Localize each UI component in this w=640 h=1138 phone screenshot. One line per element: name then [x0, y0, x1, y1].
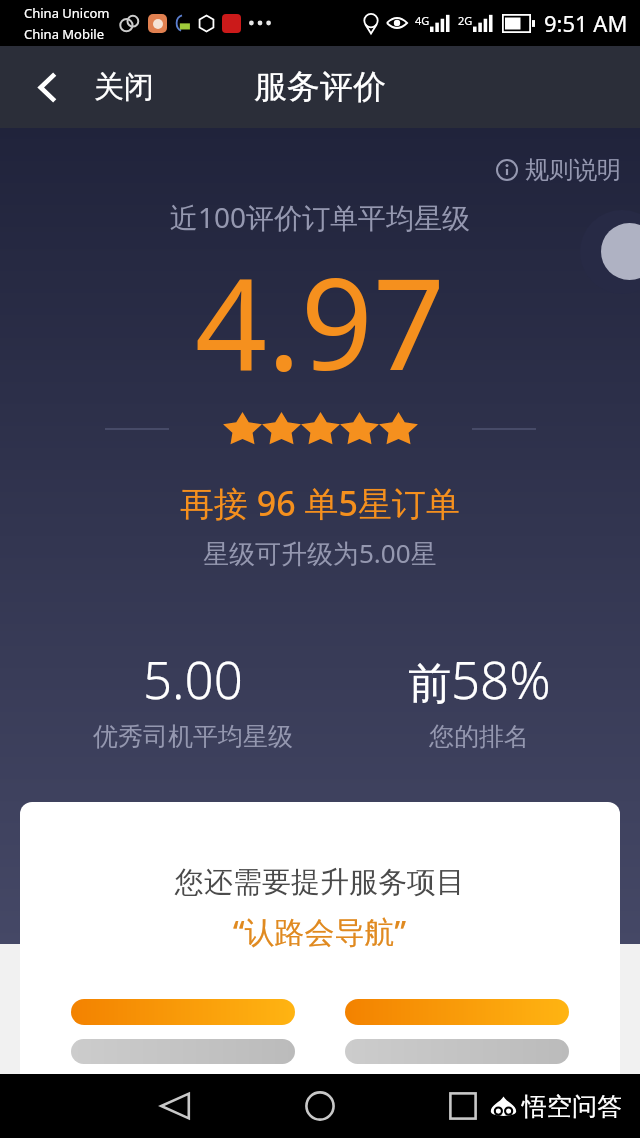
button[interactable]: Back — [145, 1076, 205, 1136]
staticText: 9:51 AM — [544, 8, 628, 38]
staticText: 星级可升级为5.00星 — [203, 535, 437, 571]
staticText: 关闭 — [94, 68, 154, 106]
staticText: 再接 96 单5星订单 — [180, 480, 461, 526]
staticText: 悟空问答 — [522, 1091, 622, 1122]
staticText: 近100评价订单平均星级 — [170, 198, 471, 236]
staticText: 4.97 — [195, 235, 445, 407]
staticText: 4G — [415, 13, 430, 28]
button[interactable]: 规则说明 — [482, 149, 640, 191]
staticText: 5.00 — [143, 644, 243, 713]
staticText: 服务评价 — [254, 66, 386, 108]
staticText: 2G — [458, 13, 473, 28]
staticText: 您的排名 — [429, 721, 529, 752]
button[interactable]: Recents — [433, 1076, 493, 1136]
button[interactable]: Avatar — [580, 210, 640, 294]
staticText: 前 — [408, 657, 451, 711]
staticText: 58% — [451, 644, 551, 713]
staticText: 优秀司机平均星级 — [93, 721, 293, 752]
staticText: 您还需要提升服务项目 — [175, 864, 465, 901]
staticText: 规则说明 — [525, 155, 621, 185]
staticText: China Unicom — [24, 4, 110, 22]
staticText: “认路会导航” — [233, 911, 407, 952]
button[interactable]: Service skill rating 2 — [345, 999, 569, 1064]
staticText: China Mobile — [24, 25, 105, 43]
button[interactable]: Home — [290, 1076, 350, 1136]
button[interactable]: 关闭 — [0, 54, 174, 120]
button[interactable]: Service skill rating 1 — [71, 999, 295, 1064]
